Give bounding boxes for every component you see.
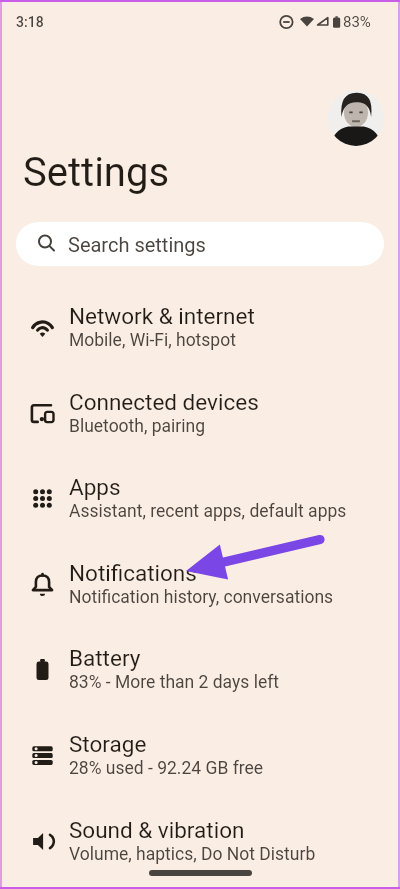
staticText: Network & internet [69, 303, 255, 329]
staticText: 28% used - 92.24 GB free [69, 758, 264, 779]
staticText: Volume, haptics, Do Not Disturb [69, 844, 316, 865]
button[interactable]: Battery [0, 627, 400, 713]
staticText: Connected devices [69, 389, 259, 415]
staticText: Notifications [69, 560, 197, 586]
button[interactable]: Storage [0, 713, 400, 799]
button[interactable]: Connected devices [0, 371, 400, 457]
staticText: Notification history, conversations [69, 587, 334, 608]
button[interactable]: Sound & vibration [0, 799, 400, 885]
staticText: 83% - More than 2 days left [69, 672, 279, 693]
staticText: Battery [69, 645, 141, 671]
staticText: Assistant, recent apps, default apps [69, 501, 347, 522]
staticText: 83% [343, 13, 371, 31]
staticText: Search settings [68, 233, 206, 256]
staticText: Mobile, Wi-Fi, hotspot [69, 330, 236, 351]
staticText: Settings [23, 149, 170, 196]
staticText: Storage [69, 731, 147, 757]
button[interactable]: Notifications [0, 542, 400, 628]
staticText: 3:18 [16, 14, 44, 30]
button[interactable]: Apps [0, 456, 400, 542]
staticText: Bluetooth, pairing [69, 416, 206, 437]
button[interactable]: Network & internet [0, 285, 400, 371]
button[interactable]: Search settings [16, 222, 384, 266]
staticText: Sound & vibration [69, 817, 245, 843]
staticText: Apps [69, 474, 121, 500]
button[interactable] [328, 90, 384, 146]
